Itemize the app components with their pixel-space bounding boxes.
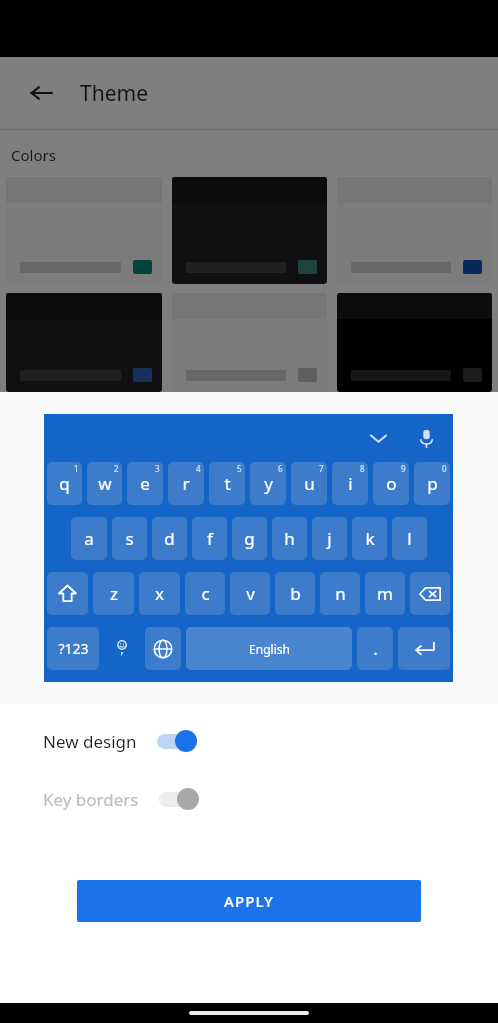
staticText: r	[182, 472, 190, 495]
button[interactable]	[6, 293, 162, 392]
staticText: u	[304, 472, 315, 495]
button[interactable]: Key borders	[0, 770, 498, 828]
staticText: APPLY	[224, 891, 274, 911]
button[interactable]: r	[168, 462, 204, 505]
staticText: 5	[237, 463, 242, 474]
staticText: Key borders	[43, 788, 139, 811]
staticText: l	[407, 527, 412, 550]
staticText: p	[427, 472, 438, 495]
staticText: 1	[74, 463, 79, 474]
button[interactable]: ?123	[47, 627, 99, 670]
button[interactable]	[172, 177, 327, 284]
staticText: n	[335, 582, 346, 605]
staticText: h	[284, 527, 295, 550]
staticText: 9	[401, 463, 406, 474]
button[interactable]: h	[272, 517, 307, 560]
staticText: z	[110, 582, 118, 605]
staticText: q	[59, 472, 70, 495]
button[interactable]: Back	[20, 72, 62, 114]
button[interactable]: z	[93, 572, 134, 615]
staticText: s	[125, 527, 134, 550]
button[interactable]: a	[71, 517, 107, 560]
staticText: c	[201, 582, 210, 605]
button[interactable]: x	[139, 572, 180, 615]
button[interactable]	[6, 177, 162, 284]
button[interactable]: w	[87, 462, 122, 505]
button[interactable]: g	[232, 517, 267, 560]
button[interactable]: t	[209, 462, 245, 505]
button[interactable]: Voice input	[409, 421, 443, 455]
staticText: t	[224, 472, 231, 495]
button[interactable]: j	[312, 517, 347, 560]
button[interactable]: m	[365, 572, 405, 615]
button[interactable]: u	[291, 462, 327, 505]
staticText: d	[164, 527, 175, 550]
button[interactable]: l	[392, 517, 427, 560]
staticText: w	[98, 472, 112, 495]
staticText: j	[327, 527, 332, 550]
button[interactable]: b	[275, 572, 315, 615]
staticText: v	[246, 582, 255, 605]
staticText: e	[140, 472, 150, 495]
staticText: ?123	[58, 639, 89, 658]
staticText: 6	[278, 463, 283, 474]
button[interactable]: c	[185, 572, 225, 615]
staticText: 4	[196, 463, 201, 474]
staticText: i	[348, 472, 353, 495]
button[interactable]: y	[250, 462, 286, 505]
button[interactable]	[337, 177, 492, 284]
button[interactable]	[104, 627, 140, 670]
staticText: k	[365, 527, 375, 550]
button[interactable]	[410, 572, 450, 615]
staticText: Theme	[80, 79, 148, 108]
staticText: y	[264, 472, 273, 495]
staticText: o	[386, 472, 397, 495]
staticText: New design	[43, 730, 137, 753]
staticText: f	[207, 527, 213, 550]
staticText: 2	[114, 463, 119, 474]
staticText: .	[373, 637, 378, 660]
button[interactable]: p	[414, 462, 450, 505]
button[interactable]: f	[192, 517, 227, 560]
button[interactable]: Expand suggestions	[361, 421, 395, 455]
button[interactable]: k	[352, 517, 387, 560]
button[interactable]	[172, 293, 327, 392]
staticText: Colors	[11, 145, 56, 165]
staticText: x	[155, 582, 164, 605]
staticText: 0	[442, 463, 447, 474]
button[interactable]: v	[230, 572, 270, 615]
button[interactable]	[47, 572, 88, 615]
staticText: a	[84, 527, 94, 550]
button[interactable]	[145, 627, 181, 670]
staticText: 7	[319, 463, 324, 474]
staticText: m	[377, 582, 393, 605]
staticText: English	[249, 641, 290, 657]
staticText: b	[290, 582, 301, 605]
button[interactable]: APPLY	[77, 880, 421, 922]
button[interactable]: English	[186, 627, 352, 670]
button[interactable]: q	[47, 462, 82, 505]
staticText: 8	[360, 463, 365, 474]
button[interactable]	[398, 627, 450, 670]
button[interactable]: d	[152, 517, 187, 560]
button[interactable]	[337, 293, 492, 392]
button[interactable]: New design	[0, 712, 498, 770]
button[interactable]: n	[320, 572, 360, 615]
staticText: g	[244, 527, 255, 550]
button[interactable]: .	[357, 627, 393, 670]
staticText: 3	[155, 463, 160, 474]
button[interactable]: o	[373, 462, 409, 505]
button[interactable]: e	[127, 462, 163, 505]
button[interactable]: i	[332, 462, 368, 505]
button[interactable]: s	[112, 517, 147, 560]
